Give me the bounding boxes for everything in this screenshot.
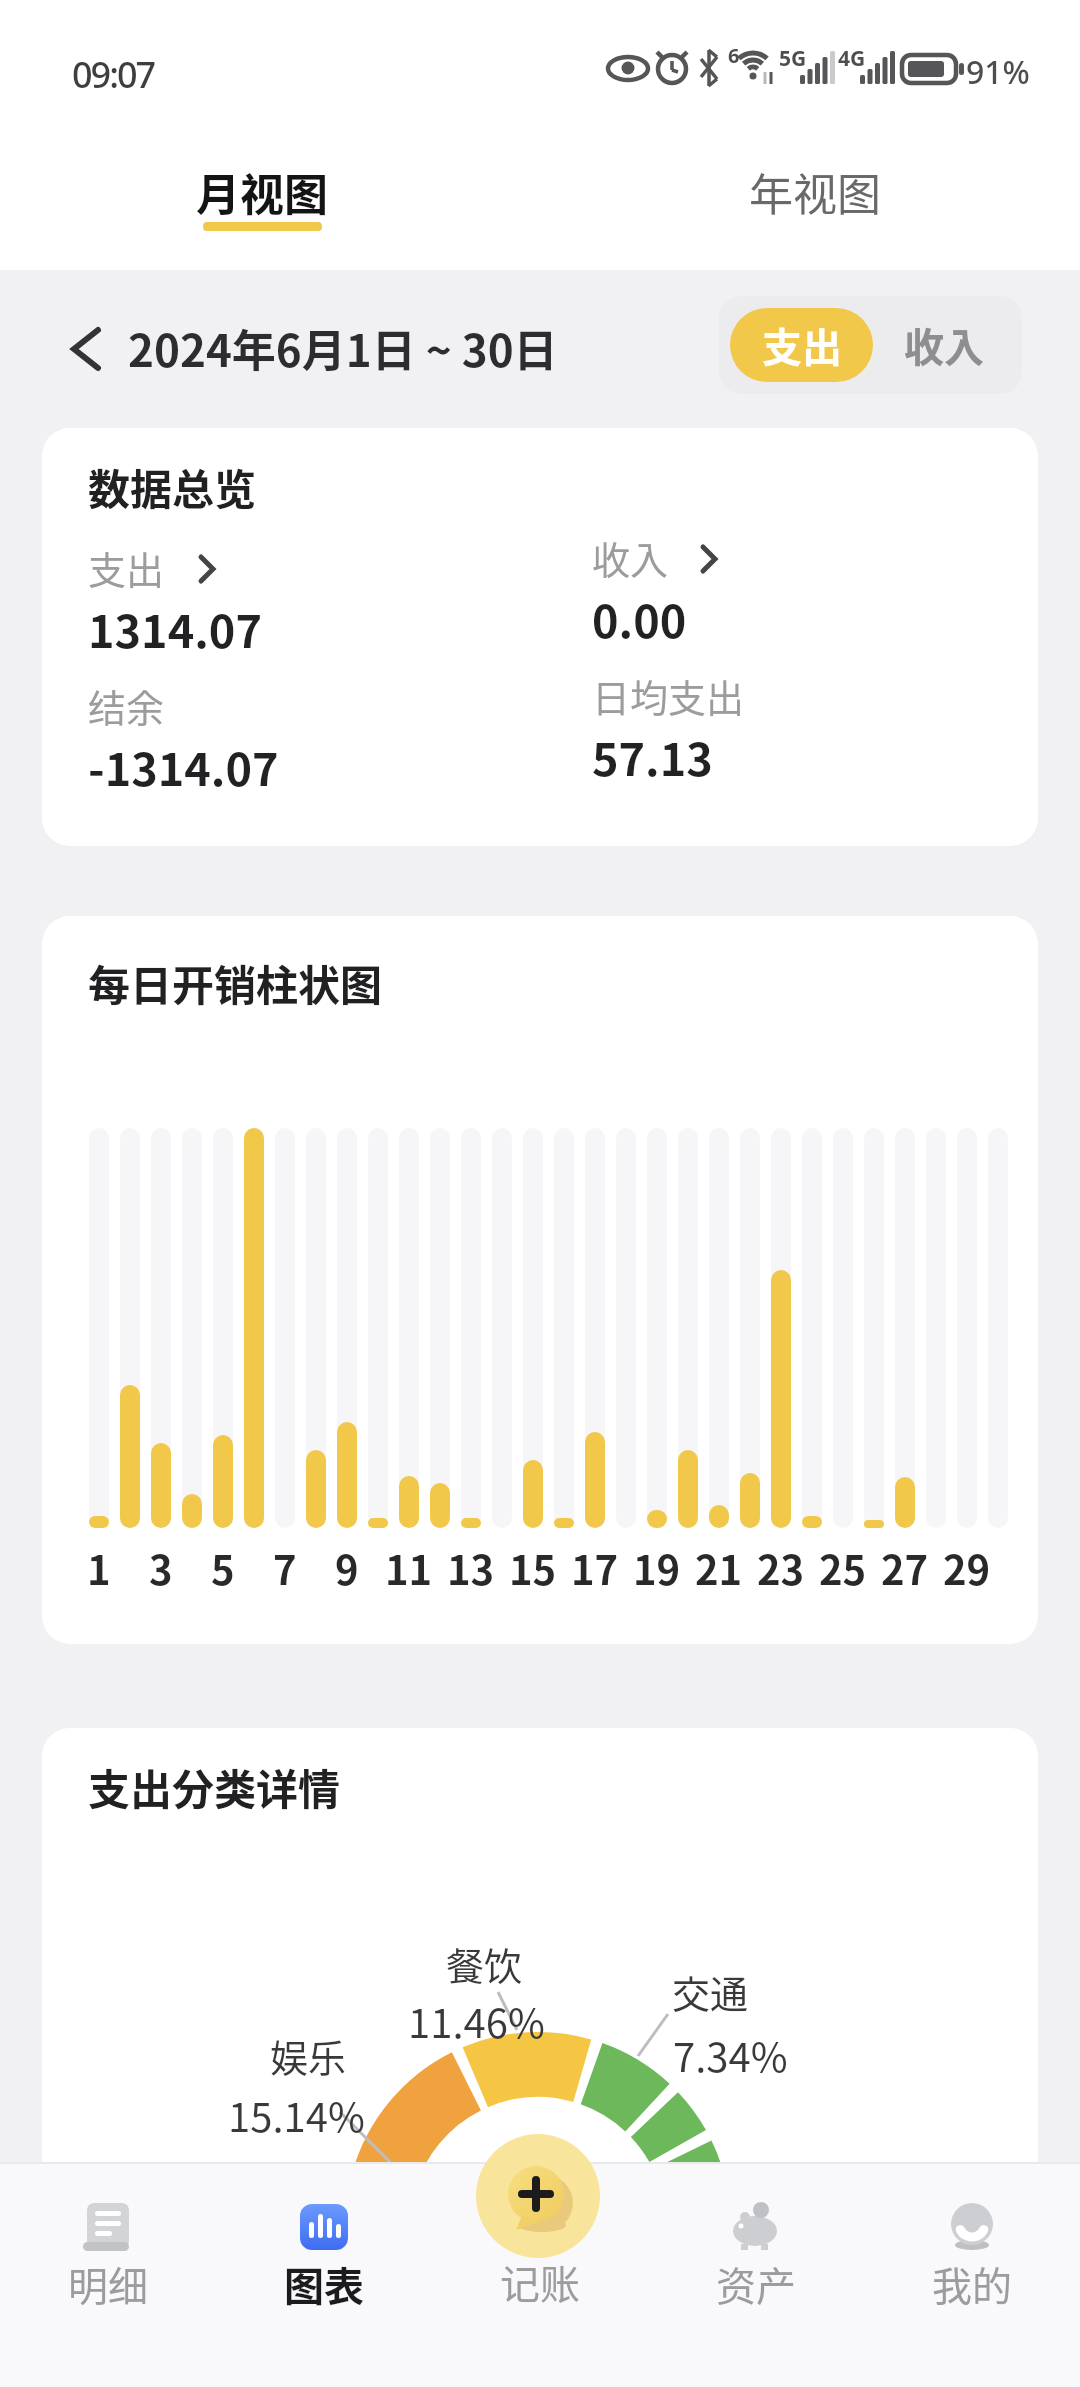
staticText: 1: [87, 1539, 111, 1597]
staticText: 57.13: [592, 724, 713, 789]
staticText: 收入: [904, 316, 984, 374]
button[interactable]: 收入: [877, 308, 1011, 382]
staticText: 27: [881, 1539, 929, 1597]
button[interactable]: 月视图: [170, 152, 354, 232]
staticText: 记账: [500, 2253, 580, 2311]
staticText: 29: [943, 1539, 991, 1597]
staticText: 资产: [716, 2255, 796, 2313]
staticText: 11: [385, 1539, 433, 1597]
button[interactable]: 明细: [0, 2170, 216, 2330]
staticText: 2024年6月1日 ~ 30日: [128, 316, 558, 380]
staticText: 支出: [88, 540, 165, 595]
staticText: 我的: [932, 2255, 1012, 2313]
button[interactable]: 支出: [730, 308, 873, 382]
staticText: 5G: [779, 44, 807, 73]
staticText: 19: [633, 1539, 681, 1597]
staticText: 1314.07: [88, 596, 262, 661]
staticText: 23: [757, 1539, 805, 1597]
staticText: 结余: [88, 678, 165, 733]
staticText: -1314.07: [88, 734, 279, 799]
staticText: 4G: [838, 44, 866, 73]
button[interactable]: 年视图: [723, 152, 907, 232]
staticText: 3: [149, 1539, 173, 1597]
staticText: 25: [819, 1539, 867, 1597]
button[interactable]: 记账: [432, 2252, 648, 2312]
staticText: 日均支出: [592, 668, 745, 723]
button[interactable]: [56, 316, 116, 382]
staticText: 15: [509, 1539, 557, 1597]
staticText: 每日开销柱状图: [88, 952, 383, 1013]
staticText: 数据总览: [88, 456, 257, 517]
staticText: 娱乐: [270, 2028, 347, 2083]
staticText: 17: [571, 1539, 619, 1597]
staticText: 月视图: [196, 160, 328, 224]
staticText: 21: [695, 1539, 743, 1597]
staticText: 91%: [966, 50, 1030, 94]
staticText: 交通: [672, 1964, 749, 2019]
staticText: 15.14%: [228, 2086, 365, 2144]
staticText: 09:07: [72, 50, 155, 99]
staticText: 0.00: [592, 586, 687, 651]
button[interactable]: 我的: [864, 2170, 1080, 2330]
button[interactable]: 图表: [216, 2170, 432, 2330]
button[interactable]: 资产: [648, 2170, 864, 2330]
staticText: 7.34%: [673, 2026, 788, 2084]
staticText: 明细: [68, 2255, 148, 2313]
staticText: 餐饮: [446, 1936, 523, 1991]
staticText: 图表: [284, 2255, 364, 2313]
button[interactable]: [88, 540, 248, 600]
staticText: 5: [211, 1539, 235, 1597]
staticText: 支出: [762, 316, 842, 374]
button[interactable]: [476, 2134, 600, 2258]
staticText: 年视图: [749, 160, 881, 224]
staticText: 7: [273, 1539, 297, 1597]
staticText: 支出分类详情: [88, 1756, 341, 1817]
staticText: 9: [335, 1539, 359, 1597]
staticText: 13: [447, 1539, 495, 1597]
staticText: 收入: [592, 530, 669, 585]
staticText: 11.46%: [408, 1992, 545, 2050]
button[interactable]: [592, 532, 752, 592]
staticText: 6: [728, 42, 740, 69]
